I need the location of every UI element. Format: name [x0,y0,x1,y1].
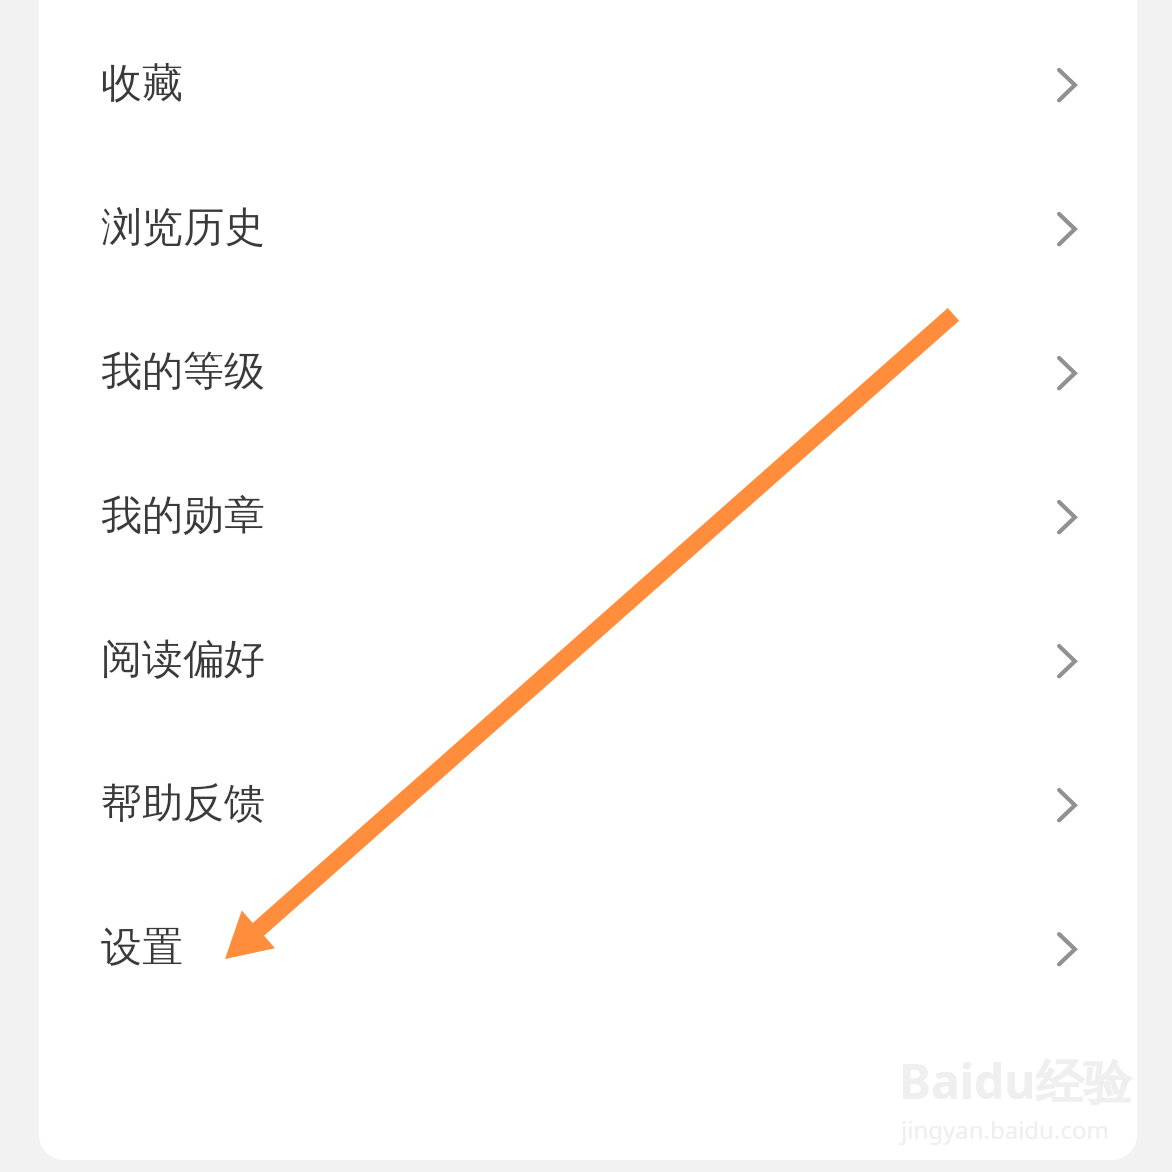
button[interactable]: 打开我的等级 [1042,346,1090,394]
button[interactable]: 打开我的勋章 [1042,490,1090,538]
staticText: 我的等级 [101,346,265,398]
button[interactable]: 打开阅读偏好 [1042,634,1090,682]
staticText: Baidu经验 [899,1048,1132,1114]
staticText: 我的勋章 [101,490,265,542]
button[interactable]: 收藏 [39,10,1137,154]
staticText: 阅读偏好 [101,634,265,686]
button[interactable]: 阅读偏好 [39,586,1137,730]
button[interactable]: 打开设置 [1042,922,1090,970]
staticText: 帮助反馈 [101,778,265,830]
button[interactable]: 帮助反馈 [39,730,1137,874]
button[interactable]: 我的勋章 [39,442,1137,586]
button[interactable]: 打开收藏 [1042,58,1090,106]
staticText: 设置 [101,922,183,974]
staticText: jingyan.baidu.com [901,1113,1109,1146]
button[interactable]: 我的等级 [39,298,1137,442]
staticText: 收藏 [101,58,183,110]
button[interactable]: 设置 [39,874,1137,1018]
button[interactable]: 打开帮助反馈 [1042,778,1090,826]
button[interactable]: 浏览历史 [39,154,1137,298]
button[interactable]: 打开浏览历史 [1042,202,1090,250]
staticText: 浏览历史 [101,202,265,254]
